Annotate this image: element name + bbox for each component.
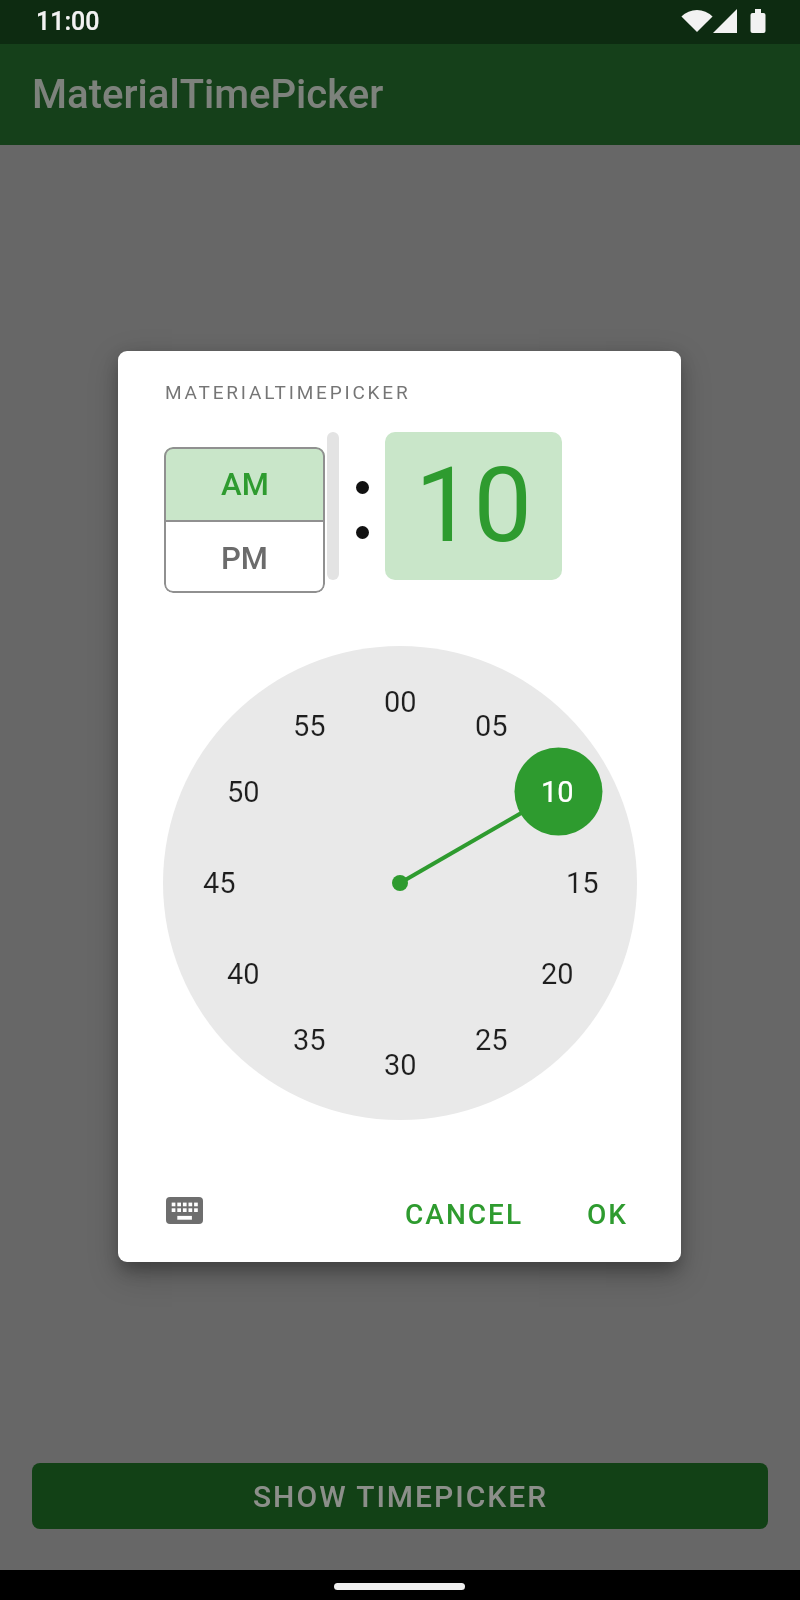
button[interactable]: CANCEL — [394, 1192, 534, 1236]
button[interactable]: 40 — [208, 956, 278, 992]
button[interactable]: 10 — [522, 774, 592, 810]
button[interactable]: 05 — [456, 708, 526, 744]
button[interactable]: 25 — [456, 1022, 526, 1058]
staticText: 40 — [227, 957, 260, 991]
button[interactable]: 35 — [274, 1022, 344, 1058]
button[interactable]: 45 — [184, 865, 254, 901]
staticText: OK — [587, 1198, 628, 1231]
staticText: MATERIALTIMEPICKER — [165, 381, 411, 403]
button[interactable]: SHOW TIMEPICKER — [32, 1463, 768, 1529]
staticText: 25 — [475, 1023, 508, 1057]
staticText: 35 — [293, 1023, 326, 1057]
button[interactable]: 55 — [274, 708, 344, 744]
staticText: 00 — [384, 685, 417, 719]
button[interactable]: AM — [164, 447, 325, 520]
button[interactable]: 10 — [385, 432, 562, 580]
staticText: 55 — [293, 709, 326, 743]
button[interactable]: 20 — [522, 956, 592, 992]
staticText: 50 — [227, 775, 260, 809]
staticText: MaterialTimePicker — [32, 71, 384, 118]
staticText: AM — [221, 466, 269, 502]
staticText: SHOW TIMEPICKER — [253, 1479, 548, 1514]
staticText: 05 — [475, 709, 508, 743]
button[interactable]: 50 — [208, 774, 278, 810]
button[interactable]: PM — [164, 522, 325, 593]
button[interactable]: 15 — [547, 865, 617, 901]
staticText: 20 — [541, 957, 574, 991]
staticText: CANCEL — [405, 1198, 524, 1231]
staticText: 10 — [541, 775, 574, 809]
staticText: 11:00 — [36, 7, 100, 36]
staticText: 10 — [415, 445, 532, 567]
button[interactable] — [166, 1197, 203, 1224]
staticText: 45 — [203, 866, 236, 900]
button[interactable]: 30 — [365, 1047, 435, 1083]
staticText: 30 — [384, 1048, 417, 1082]
button[interactable]: 00 — [365, 684, 435, 720]
staticText: 15 — [566, 866, 599, 900]
staticText: PM — [221, 540, 268, 576]
button[interactable]: OK — [567, 1192, 647, 1236]
